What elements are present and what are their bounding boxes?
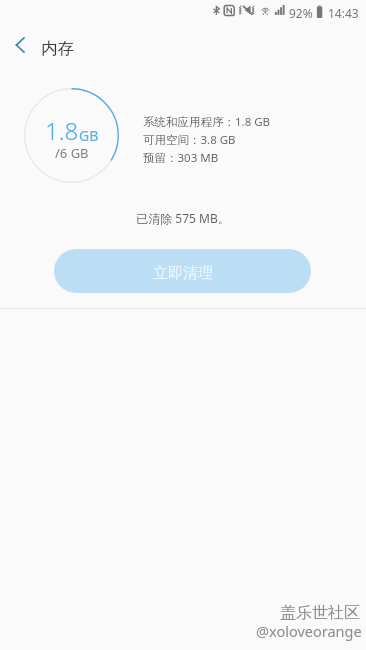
staticText: @xoloveorange [256,621,362,641]
staticText: 92% [289,5,313,21]
staticText: GB [79,126,99,145]
staticText: 已清除 575 MB。 [0,210,366,226]
staticText: 1.8 [45,114,79,147]
staticText: 立即清理 [153,264,213,283]
staticText: 内存 [41,38,74,59]
button[interactable]: 立即清理 [54,249,311,293]
staticText: 可用空间：3.8 GB [143,132,236,148]
staticText: 14:43 [328,5,359,21]
button[interactable]: 1.8 [0,80,366,192]
staticText: /6 GB [55,144,89,162]
button[interactable]: Back [0,24,40,64]
staticText: 系统和应用程序：1.8 GB [143,114,271,130]
staticText: 预留：303 MB [143,150,219,166]
staticText: 盖乐世社区 [280,603,360,623]
